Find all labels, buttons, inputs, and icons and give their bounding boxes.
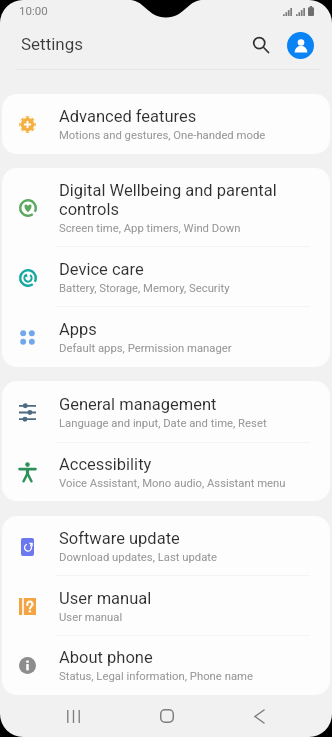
- staticText: Accessibility: [59, 455, 152, 474]
- staticText: Apps: [59, 320, 97, 339]
- staticText: Device care: [59, 260, 144, 279]
- staticText: Default apps, Permission manager: [59, 342, 232, 355]
- staticText: User manual: [59, 589, 152, 608]
- staticText: About phone: [59, 648, 153, 667]
- staticText: controls: [59, 200, 119, 219]
- button[interactable]: Search: [244, 28, 278, 62]
- staticText: General management: [59, 395, 217, 414]
- staticText: Software update: [59, 529, 180, 548]
- button[interactable]: General management: [2, 381, 330, 443]
- staticText: Screen time, App timers, Wind Down: [59, 222, 241, 235]
- button[interactable]: Apps: [2, 307, 330, 367]
- staticText: Motions and gestures, One-handed mode: [59, 129, 266, 142]
- button[interactable]: Accessibility: [2, 443, 330, 501]
- staticText: Download updates, Last update: [59, 551, 218, 564]
- staticText: Battery, Storage, Memory, Security: [59, 282, 230, 295]
- staticText: Language and input, Date and time, Reset: [59, 417, 267, 430]
- staticText: Advanced features: [59, 107, 197, 126]
- staticText: Status, Legal information, Phone name: [59, 670, 253, 683]
- button[interactable]: Account: [283, 28, 317, 62]
- button[interactable]: Software update: [2, 516, 330, 576]
- button[interactable]: Device care: [2, 247, 330, 307]
- staticText: 10:00: [19, 4, 48, 17]
- staticText: Digital Wellbeing and parental: [59, 181, 277, 200]
- button[interactable]: Advanced features: [2, 94, 330, 154]
- button[interactable]: Home: [120, 695, 213, 737]
- button[interactable]: Digital Wellbeing and parental: [2, 168, 330, 247]
- staticText: Settings: [21, 34, 84, 54]
- button[interactable]: User manual: [2, 576, 330, 636]
- staticText: Voice Assistant, Mono audio, Assistant m…: [59, 477, 286, 490]
- button[interactable]: About phone: [2, 636, 330, 695]
- staticText: User manual: [59, 611, 123, 624]
- button[interactable]: Recent apps: [27, 695, 120, 737]
- button[interactable]: Back: [213, 695, 306, 737]
